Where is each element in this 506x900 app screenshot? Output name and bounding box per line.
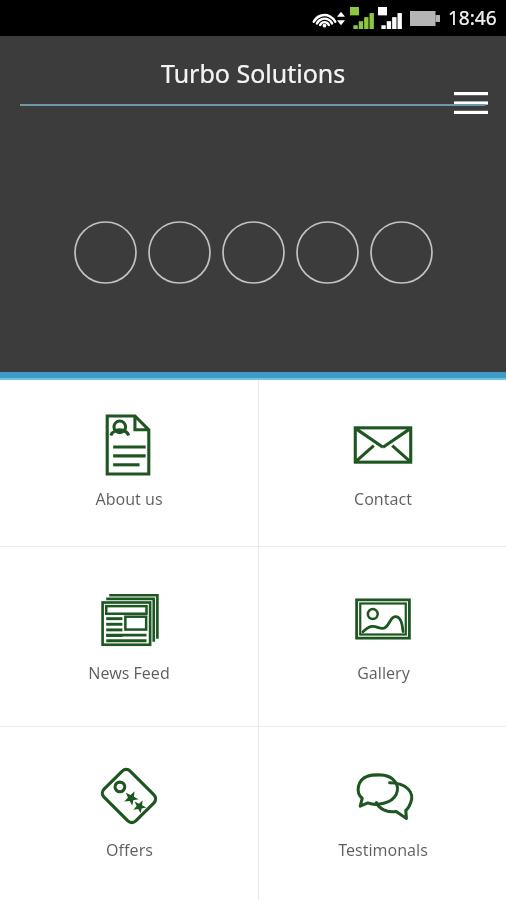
staticText: About us xyxy=(95,488,163,510)
staticText: Gallery xyxy=(357,662,410,684)
button[interactable]: Open navigation menu xyxy=(448,80,494,126)
button[interactable]: Gallery xyxy=(259,547,506,726)
staticText: 18:46 xyxy=(448,5,497,31)
staticText: Testimonals xyxy=(338,839,428,861)
staticText: Offers xyxy=(106,839,153,861)
staticText: Contact xyxy=(354,488,412,510)
button[interactable]: About us xyxy=(0,380,258,546)
button[interactable]: Testimonals xyxy=(259,727,506,900)
button[interactable]: News Feed xyxy=(0,547,258,726)
staticText: Turbo Solutions xyxy=(161,56,346,90)
staticText: News Feed xyxy=(88,662,170,684)
button[interactable]: Offers xyxy=(0,727,258,900)
button[interactable]: Contact xyxy=(259,380,506,546)
